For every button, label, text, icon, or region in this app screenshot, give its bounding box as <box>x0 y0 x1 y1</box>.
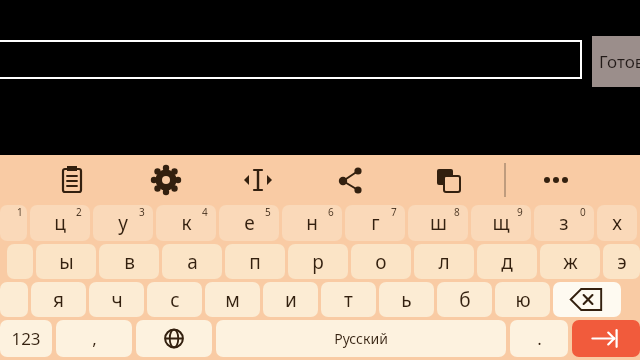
staticText: э <box>617 249 627 275</box>
staticText: а <box>187 249 198 275</box>
staticText: Готово <box>599 50 640 73</box>
button[interactable]: п <box>225 244 285 279</box>
button[interactable]: ш <box>408 205 468 241</box>
staticText: ы <box>59 249 74 275</box>
button[interactable]: ч <box>89 282 144 317</box>
button[interactable]: , <box>56 320 132 357</box>
staticText: с <box>170 287 180 313</box>
button[interactable]: з <box>534 205 594 241</box>
staticText: я <box>53 287 64 313</box>
button[interactable]: ц <box>30 205 90 241</box>
staticText: ш <box>430 210 447 236</box>
staticText: 4 <box>202 205 208 219</box>
staticText: 0 <box>580 205 586 219</box>
button[interactable]: л <box>414 244 474 279</box>
button[interactable]: Shift <box>0 282 28 317</box>
button[interactable]: Translate <box>426 158 470 202</box>
staticText: ж <box>563 249 578 275</box>
staticText: 1 <box>17 205 23 219</box>
button[interactable]: г <box>345 205 405 241</box>
button[interactable]: б <box>437 282 492 317</box>
staticText: Русский <box>334 329 388 348</box>
staticText: 2 <box>76 205 82 219</box>
staticText: , <box>92 327 97 350</box>
button[interactable]: х <box>597 205 637 241</box>
button[interactable]: Русский <box>216 320 506 357</box>
staticText: 8 <box>454 205 460 219</box>
staticText: 6 <box>328 205 334 219</box>
button[interactable] <box>0 40 582 79</box>
button[interactable]: ы <box>36 244 96 279</box>
button[interactable]: 123 <box>0 320 52 357</box>
staticText: е <box>244 210 255 236</box>
staticText: у <box>118 210 128 236</box>
staticText: р <box>312 249 324 275</box>
staticText: ь <box>401 287 412 313</box>
button[interactable]: Enter <box>572 320 640 357</box>
staticText: б <box>459 287 471 313</box>
button[interactable]: Backspace <box>553 282 621 317</box>
staticText: о <box>375 249 387 275</box>
button[interactable]: в <box>99 244 159 279</box>
button[interactable]: и <box>263 282 318 317</box>
button[interactable]: Settings <box>144 158 188 202</box>
button[interactable]: р <box>288 244 348 279</box>
staticText: 9 <box>517 205 523 219</box>
button[interactable]: More options <box>534 158 578 202</box>
staticText: и <box>285 287 297 313</box>
staticText: п <box>249 249 261 275</box>
staticText: . <box>537 327 542 350</box>
staticText: к <box>181 210 192 236</box>
button[interactable]: ж <box>540 244 600 279</box>
button[interactable]: . <box>510 320 568 357</box>
staticText: н <box>306 210 318 236</box>
button[interactable] <box>7 244 33 279</box>
button[interactable]: к <box>156 205 216 241</box>
button[interactable]: Готово <box>592 36 640 87</box>
button[interactable]: н <box>282 205 342 241</box>
button[interactable]: щ <box>471 205 531 241</box>
button[interactable]: Clipboard <box>50 158 94 202</box>
staticText: 5 <box>265 205 271 219</box>
staticText: в <box>124 249 135 275</box>
button[interactable]: д <box>477 244 537 279</box>
button[interactable]: о <box>351 244 411 279</box>
staticText: м <box>225 287 240 313</box>
button[interactable]: т <box>321 282 376 317</box>
button[interactable]: а <box>162 244 222 279</box>
button[interactable]: с <box>147 282 202 317</box>
button[interactable]: м <box>205 282 260 317</box>
staticText: щ <box>492 210 510 236</box>
button[interactable]: э <box>603 244 640 279</box>
staticText: 7 <box>391 205 397 219</box>
button[interactable]: Change language <box>136 320 212 357</box>
button[interactable]: у <box>93 205 153 241</box>
button[interactable]: ь <box>379 282 434 317</box>
staticText: т <box>344 287 353 313</box>
button[interactable]: Cursor control <box>236 158 280 202</box>
staticText: л <box>438 249 450 275</box>
staticText: г <box>371 210 380 236</box>
button[interactable]: 1 <box>0 205 27 241</box>
staticText: з <box>559 210 569 236</box>
staticText: ч <box>111 287 123 313</box>
button[interactable]: Share <box>329 158 373 202</box>
button[interactable]: е <box>219 205 279 241</box>
staticText: ю <box>515 287 531 313</box>
staticText: ц <box>54 210 66 236</box>
button[interactable]: ю <box>495 282 550 317</box>
button[interactable]: я <box>31 282 86 317</box>
staticText: д <box>501 249 513 275</box>
staticText: 3 <box>139 205 145 219</box>
staticText: х <box>612 210 622 236</box>
staticText: 123 <box>11 327 41 350</box>
